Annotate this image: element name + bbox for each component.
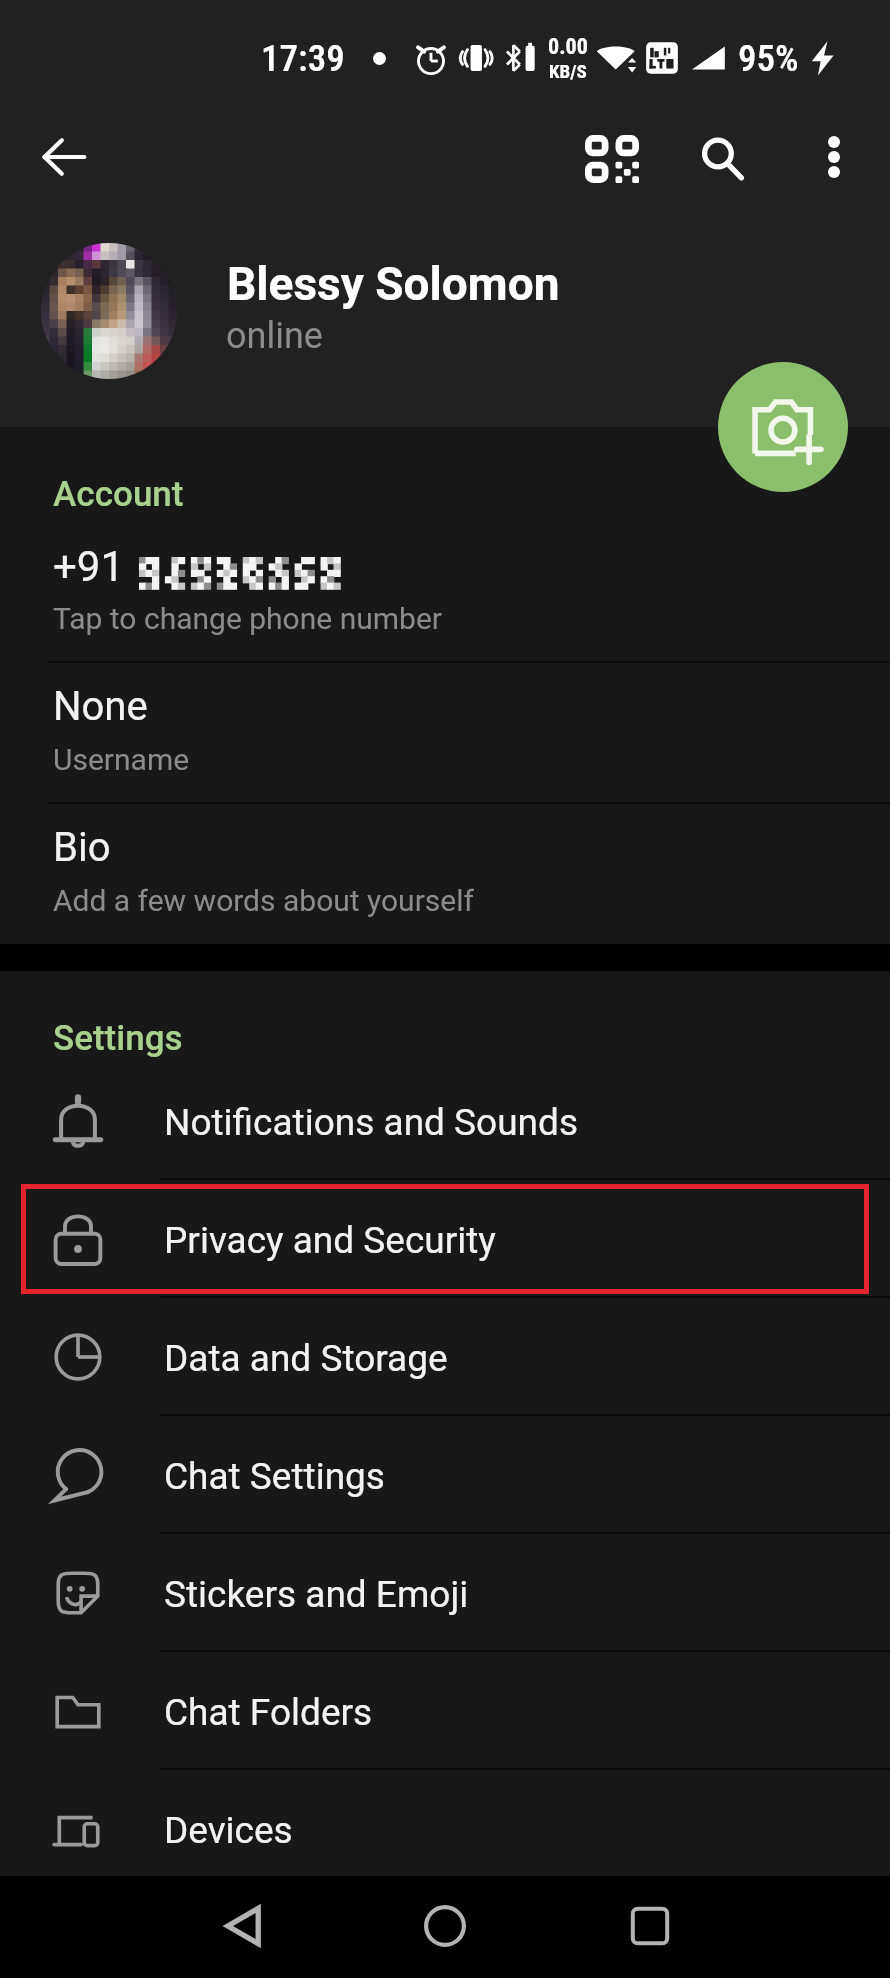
staticText: Settings	[53, 1018, 183, 1059]
button[interactable]: Blessy Solomon	[0, 225, 890, 400]
button[interactable]: Back	[203, 1886, 283, 1966]
button[interactable]: Search	[681, 119, 765, 199]
staticText: Blessy Solomon	[227, 257, 560, 311]
button[interactable]: Chat Settings	[0, 1414, 890, 1532]
staticText: Data and Storage	[164, 1337, 448, 1380]
staticText: Devices	[164, 1809, 293, 1852]
button[interactable]: Bio	[0, 802, 890, 943]
staticText: Stickers and Emoji	[164, 1573, 469, 1616]
staticText: Chat Folders	[164, 1691, 373, 1734]
staticText: Tap to change phone number	[53, 601, 442, 636]
staticText: 17:39	[261, 37, 345, 80]
button[interactable]: Recent apps	[610, 1886, 690, 1966]
button[interactable]: Stickers and Emoji	[0, 1532, 890, 1650]
staticText: Username	[53, 742, 190, 777]
button[interactable]: None	[0, 661, 890, 802]
staticText: 95%	[738, 37, 799, 80]
staticText: Account	[53, 474, 184, 515]
staticText: Notifications and Sounds	[164, 1101, 578, 1144]
button[interactable]: Privacy and Security	[0, 1178, 890, 1296]
staticText: KB/S	[549, 60, 587, 82]
button[interactable]: Change profile photo	[718, 362, 848, 492]
button[interactable]: Notifications and Sounds	[0, 1060, 890, 1178]
staticText: online	[226, 315, 323, 357]
button[interactable]: Data and Storage	[0, 1296, 890, 1414]
staticText: Chat Settings	[164, 1455, 385, 1498]
staticText: 0.00	[548, 34, 588, 60]
button[interactable]: Devices	[0, 1768, 890, 1886]
staticText: +91	[53, 542, 125, 591]
button[interactable]: More options	[792, 117, 876, 197]
button[interactable]: Home	[405, 1886, 485, 1966]
staticText: Bio	[53, 824, 111, 871]
button[interactable]: +91	[0, 520, 890, 661]
staticText: Privacy and Security	[164, 1219, 496, 1262]
staticText: Add a few words about yourself	[53, 883, 474, 918]
button[interactable]: Scan QR code	[570, 119, 654, 199]
staticText: None	[53, 683, 148, 730]
button[interactable]: Chat Folders	[0, 1650, 890, 1768]
button[interactable]: Back	[22, 117, 106, 197]
